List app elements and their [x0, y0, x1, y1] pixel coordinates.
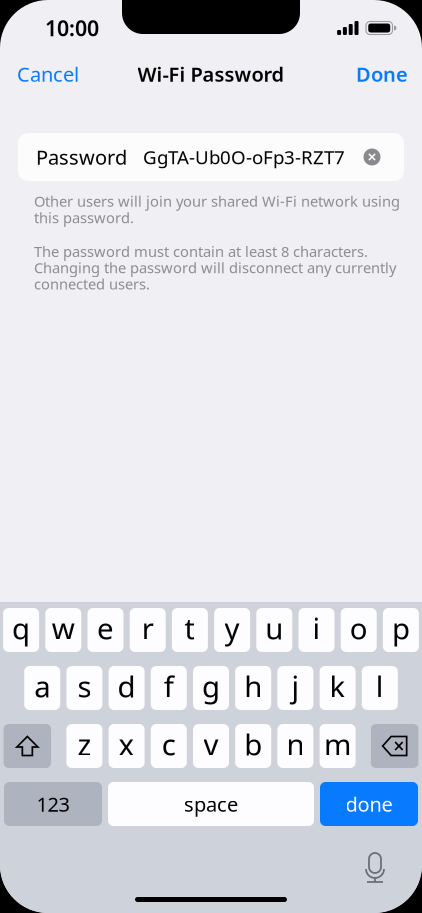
button[interactable]: z: [66, 724, 102, 768]
staticText: this password.: [34, 208, 134, 227]
staticText: s: [77, 666, 91, 705]
button[interactable]: j: [277, 666, 313, 710]
staticText: y: [225, 608, 240, 647]
staticText: g: [202, 666, 220, 705]
button[interactable]: y: [214, 608, 250, 652]
button[interactable]: Cancel: [17, 53, 79, 95]
button[interactable]: g: [193, 666, 229, 710]
staticText: w: [52, 608, 75, 647]
staticText: o: [350, 608, 368, 647]
button[interactable]: Clear text: [349, 133, 404, 181]
button[interactable]: r: [130, 608, 166, 652]
button[interactable]: s: [66, 666, 102, 710]
button[interactable]: Done: [356, 53, 408, 95]
staticText: b: [244, 724, 262, 763]
staticText: Cancel: [17, 61, 79, 87]
staticText: Password: [36, 144, 127, 170]
staticText: Wi‑Fi Password: [137, 61, 284, 87]
staticText: connected users.: [34, 274, 150, 294]
button[interactable]: d: [109, 666, 145, 710]
button[interactable]: q: [3, 608, 39, 652]
staticText: m: [324, 724, 351, 763]
button[interactable]: p: [383, 608, 419, 652]
staticText: Other users will join your shared Wi‑Fi …: [34, 191, 400, 211]
button[interactable]: m: [320, 724, 356, 768]
staticText: done: [345, 791, 392, 817]
staticText: The password must contain at least 8 cha…: [34, 241, 368, 261]
button[interactable]: o: [341, 608, 377, 652]
staticText: Changing the password will disconnect an…: [34, 258, 396, 277]
button[interactable]: v: [193, 724, 229, 768]
staticText: p: [392, 608, 410, 647]
staticText: i: [312, 608, 320, 647]
staticText: f: [164, 666, 174, 705]
staticText: c: [162, 724, 176, 763]
button[interactable]: b: [235, 724, 271, 768]
button[interactable]: e: [87, 608, 123, 652]
staticText: 123: [36, 791, 69, 817]
staticText: GgTA-Ub0O-oFp3-RZT7: [143, 145, 345, 169]
button[interactable]: n: [277, 724, 313, 768]
button[interactable]: t: [172, 608, 208, 652]
staticText: r: [142, 608, 154, 647]
button[interactable]: Shift: [4, 724, 51, 768]
button[interactable]: i: [298, 608, 334, 652]
staticText: x: [119, 724, 135, 763]
button[interactable]: l: [362, 666, 398, 710]
staticText: t: [184, 608, 195, 647]
staticText: n: [286, 724, 304, 763]
staticText: u: [265, 608, 283, 647]
button[interactable]: space: [108, 782, 314, 826]
button[interactable]: 123: [4, 782, 102, 826]
button[interactable]: x: [109, 724, 145, 768]
staticText: a: [34, 666, 50, 705]
button[interactable]: h: [235, 666, 271, 710]
staticText: 10:00: [45, 14, 99, 42]
staticText: v: [203, 724, 218, 763]
staticText: q: [12, 608, 30, 647]
staticText: Done: [356, 61, 408, 87]
button[interactable]: Dictate: [361, 851, 389, 885]
staticText: l: [376, 666, 384, 705]
button[interactable]: a: [24, 666, 60, 710]
button[interactable]: k: [320, 666, 356, 710]
staticText: e: [97, 608, 114, 647]
button[interactable]: w: [45, 608, 81, 652]
staticText: d: [118, 666, 136, 705]
button[interactable]: u: [256, 608, 292, 652]
staticText: z: [77, 724, 91, 763]
staticText: h: [244, 666, 262, 705]
button[interactable]: Delete: [371, 724, 418, 768]
button[interactable]: c: [151, 724, 187, 768]
staticText: space: [184, 791, 238, 817]
staticText: j: [291, 666, 299, 705]
button[interactable]: f: [151, 666, 187, 710]
staticText: k: [330, 666, 346, 705]
button[interactable]: done: [320, 782, 418, 826]
